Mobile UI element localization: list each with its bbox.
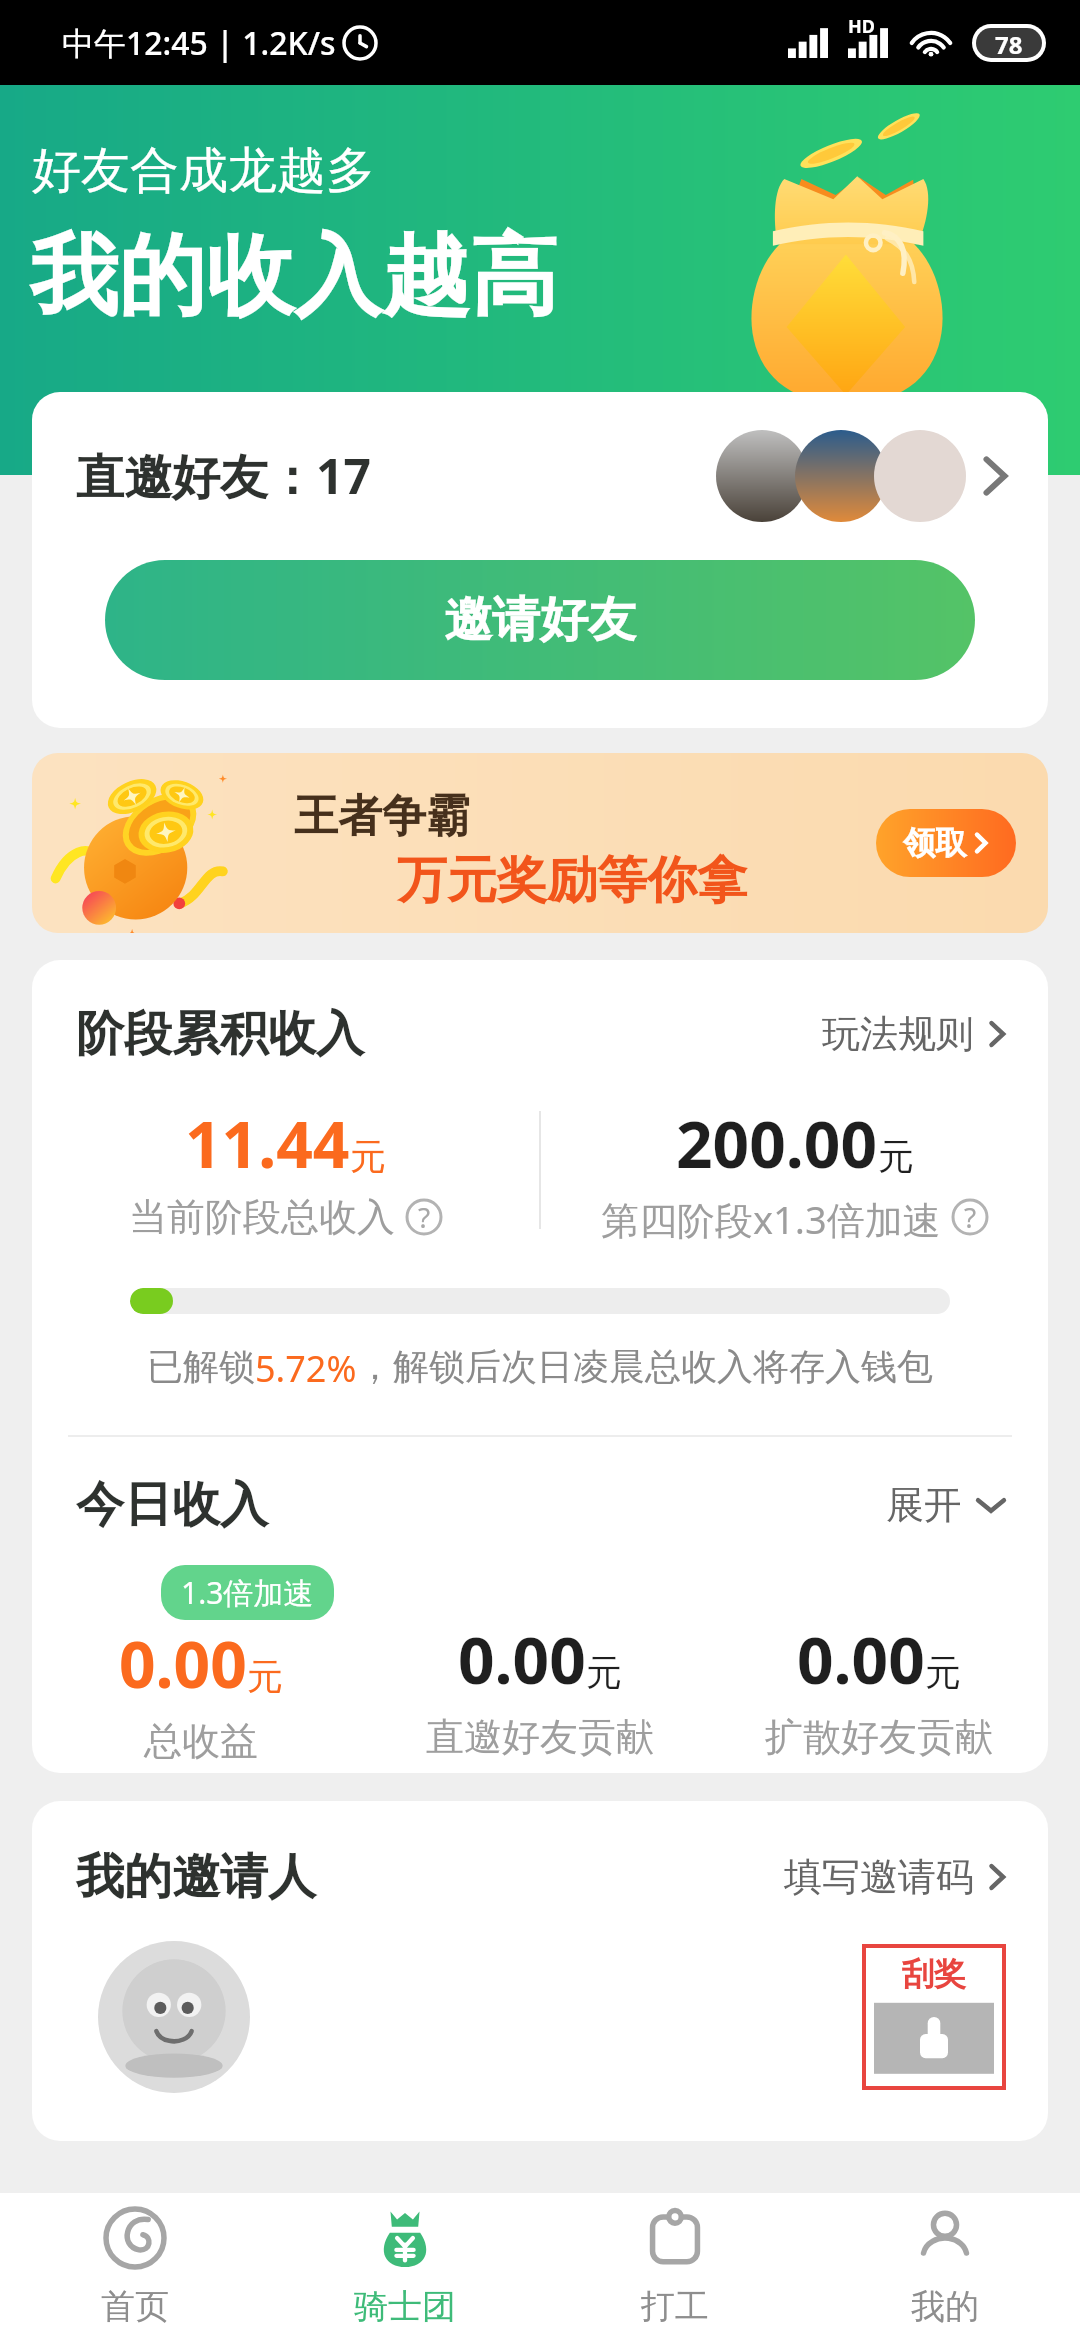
- staticText: 邀请好友: [444, 590, 636, 650]
- staticText: 第四阶段x1.3倍加速: [601, 1193, 941, 1240]
- other: 查看好友: [978, 450, 1012, 502]
- staticText: 今日收入: [76, 1475, 268, 1535]
- staticText: ?: [418, 1198, 431, 1236]
- button[interactable]: 直邀好友：17: [76, 392, 1012, 560]
- staticText: 王者争霸: [294, 789, 470, 844]
- staticText: 刮奖: [902, 1954, 966, 1994]
- button[interactable]: 我的: [810, 2193, 1080, 2340]
- staticText: 万元奖励等你拿: [397, 849, 747, 912]
- button[interactable]: 王者争霸: [32, 753, 1048, 933]
- button[interactable]: 首页: [0, 2193, 270, 2340]
- staticText: 好友合成龙越多: [32, 140, 375, 202]
- staticText: 已解锁: [147, 1344, 255, 1389]
- staticText: ，解锁后次日凌晨总收入将存入钱包: [357, 1344, 933, 1389]
- staticText: 直邀好友贡献: [426, 1713, 654, 1761]
- staticText: 元: [350, 1134, 386, 1179]
- staticText: 骑士团: [354, 2285, 456, 2328]
- staticText: 填写邀请码: [784, 1853, 974, 1901]
- staticText: 展开: [886, 1481, 962, 1529]
- staticText: 首页: [101, 2285, 169, 2328]
- staticText: 领取: [903, 823, 967, 863]
- staticText: 我的邀请人: [76, 1847, 316, 1907]
- staticText: 我的收入越高: [30, 221, 558, 332]
- button[interactable]: 帮助: [951, 1198, 989, 1236]
- staticText: 阶段累积收入: [76, 1004, 364, 1064]
- staticText: 1.3倍加速: [181, 1572, 314, 1613]
- button[interactable]: 帮助: [405, 1198, 443, 1236]
- button[interactable]: 打工: [540, 2193, 810, 2340]
- staticText: 总收益: [144, 1717, 258, 1765]
- staticText: 元: [878, 1134, 914, 1179]
- staticText: 玩法规则: [822, 1010, 974, 1058]
- staticText: 元: [925, 1650, 961, 1695]
- button[interactable]: 邀请好友: [105, 560, 975, 680]
- staticText: 元: [247, 1654, 283, 1699]
- staticText: 中午12:45 | 1.2K/s: [62, 21, 336, 65]
- staticText: 打工: [641, 2285, 709, 2328]
- staticText: 我的: [911, 2285, 979, 2328]
- staticText: 元: [586, 1650, 622, 1695]
- staticText: 0.00: [797, 1616, 925, 1703]
- staticText: 11.44: [185, 1100, 350, 1187]
- staticText: 200.00: [676, 1100, 878, 1187]
- staticText: ?: [964, 1198, 977, 1236]
- staticText: 78: [995, 28, 1023, 58]
- button[interactable]: 领取: [876, 809, 1016, 877]
- button[interactable]: 填写邀请码: [780, 1849, 1012, 1905]
- button[interactable]: 刮奖: [864, 1946, 1004, 2088]
- staticText: 扩散好友贡献: [765, 1713, 993, 1761]
- staticText: 0.00: [458, 1616, 586, 1703]
- staticText: 0.00: [119, 1620, 247, 1707]
- staticText: 5.72%: [255, 1344, 357, 1393]
- staticText: HD: [848, 14, 875, 39]
- staticText: 当前阶段总收入: [129, 1193, 395, 1240]
- button[interactable]: 玩法规则: [818, 1006, 1012, 1062]
- button[interactable]: 骑士团: [270, 2193, 540, 2340]
- button[interactable]: 展开: [882, 1477, 1012, 1533]
- staticText: 直邀好友：17: [76, 443, 371, 509]
